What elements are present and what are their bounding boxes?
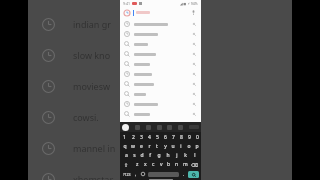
staticText: g <box>157 152 161 159</box>
staticText: mannel in <box>73 142 116 154</box>
staticText: z <box>136 161 139 168</box>
staticText: l <box>194 152 196 159</box>
button[interactable]: , <box>133 169 139 179</box>
staticText: 1 <box>123 134 126 141</box>
button[interactable]: ?123 <box>121 169 133 179</box>
staticText: t <box>156 143 158 150</box>
staticText: j <box>176 152 178 159</box>
staticText: c <box>152 161 155 168</box>
staticText: 9:41 <box>123 1 130 6</box>
button[interactable]: i <box>177 142 185 151</box>
button[interactable]: z <box>133 160 141 169</box>
button[interactable]: Space <box>148 172 179 177</box>
button[interactable]: b <box>165 160 173 169</box>
button[interactable]: g <box>154 151 163 160</box>
button[interactable]: Voice search <box>120 7 201 18</box>
staticText: x <box>144 161 147 168</box>
button[interactable]: e <box>137 142 145 151</box>
button[interactable]: w <box>129 142 137 151</box>
staticText: slow kno <box>73 49 111 61</box>
staticText: ⇧ <box>124 162 129 168</box>
staticText: ⌫ <box>191 162 199 168</box>
button[interactable] <box>120 19 201 29</box>
button[interactable] <box>120 99 201 109</box>
staticText: b <box>167 161 171 168</box>
button[interactable]: v <box>157 160 165 169</box>
button[interactable]: q <box>120 142 129 151</box>
button[interactable]: Keyboard tool 1 <box>135 125 140 130</box>
button[interactable]: Backspace <box>189 160 201 169</box>
button[interactable] <box>120 89 201 99</box>
staticText: 2 <box>132 134 135 141</box>
staticText: v <box>160 161 163 168</box>
button[interactable]: 3 <box>137 133 145 142</box>
button[interactable]: 4 <box>145 133 153 142</box>
staticText: o <box>187 143 191 150</box>
button[interactable]: k <box>181 151 190 160</box>
button[interactable] <box>120 109 201 119</box>
button[interactable]: c <box>149 160 157 169</box>
button[interactable] <box>120 29 201 39</box>
button[interactable]: h <box>163 151 172 160</box>
staticText: 5 <box>156 134 159 141</box>
staticText: xhemstar <box>73 173 114 180</box>
button[interactable]: a <box>122 151 130 160</box>
button[interactable]: j <box>172 151 181 160</box>
button[interactable]: d <box>138 151 146 160</box>
button[interactable]: r <box>145 142 153 151</box>
staticText: r <box>148 143 151 150</box>
button[interactable]: Keyboard tool 5 <box>178 125 183 130</box>
button[interactable]: Keyboard tool 2 <box>146 125 151 130</box>
button[interactable]: mannel in <box>28 134 292 162</box>
button[interactable]: 0 <box>193 133 201 142</box>
button[interactable]: Keyboard tool 4 <box>167 125 172 130</box>
button[interactable] <box>120 59 201 69</box>
button[interactable]: moviesw <box>28 72 292 100</box>
button[interactable]: 8 <box>177 133 185 142</box>
button[interactable] <box>120 39 201 49</box>
button[interactable] <box>120 49 201 59</box>
button[interactable]: l <box>190 151 199 160</box>
button[interactable] <box>120 69 201 79</box>
button[interactable]: xhemstar <box>28 165 292 180</box>
button[interactable]: Emoji <box>139 169 147 179</box>
staticText: cowsi. <box>73 111 99 123</box>
button[interactable]: x <box>141 160 149 169</box>
button[interactable]: slow kno <box>28 41 292 69</box>
button[interactable]: o <box>185 142 193 151</box>
button[interactable]: y <box>161 142 169 151</box>
button[interactable]: indian gr <box>28 10 292 38</box>
button[interactable]: 2 <box>129 133 137 142</box>
staticText: i <box>180 143 182 150</box>
staticText: m <box>183 161 188 168</box>
staticText: 7 <box>172 134 175 141</box>
button[interactable]: 6 <box>161 133 169 142</box>
button[interactable]: Shift <box>120 160 133 169</box>
staticText: , <box>135 171 137 177</box>
button[interactable]: cowsi. <box>28 103 292 131</box>
button[interactable]: 9 <box>185 133 193 142</box>
staticText: n <box>175 161 179 168</box>
button[interactable]: n <box>173 160 181 169</box>
button[interactable]: s <box>130 151 138 160</box>
staticText: y <box>164 143 167 150</box>
staticText: . <box>183 171 185 177</box>
button[interactable]: Voice search <box>190 9 197 16</box>
button[interactable]: . <box>180 169 187 179</box>
staticText: ◢ ◼ ⚡ 94% <box>180 1 198 6</box>
button[interactable]: Search <box>188 171 199 178</box>
button[interactable]: 1 <box>120 133 129 142</box>
button[interactable]: f <box>146 151 154 160</box>
button[interactable]: Google <box>122 124 129 131</box>
button[interactable]: m <box>181 160 189 169</box>
staticText: 6 <box>164 134 167 141</box>
button[interactable]: u <box>169 142 177 151</box>
button[interactable]: t <box>153 142 161 151</box>
button[interactable]: Keyboard tool 3 <box>157 125 162 130</box>
button[interactable]: 5 <box>153 133 161 142</box>
staticText: p <box>195 143 199 150</box>
button[interactable] <box>120 79 201 89</box>
button[interactable]: 7 <box>169 133 177 142</box>
button[interactable]: p <box>193 142 201 151</box>
